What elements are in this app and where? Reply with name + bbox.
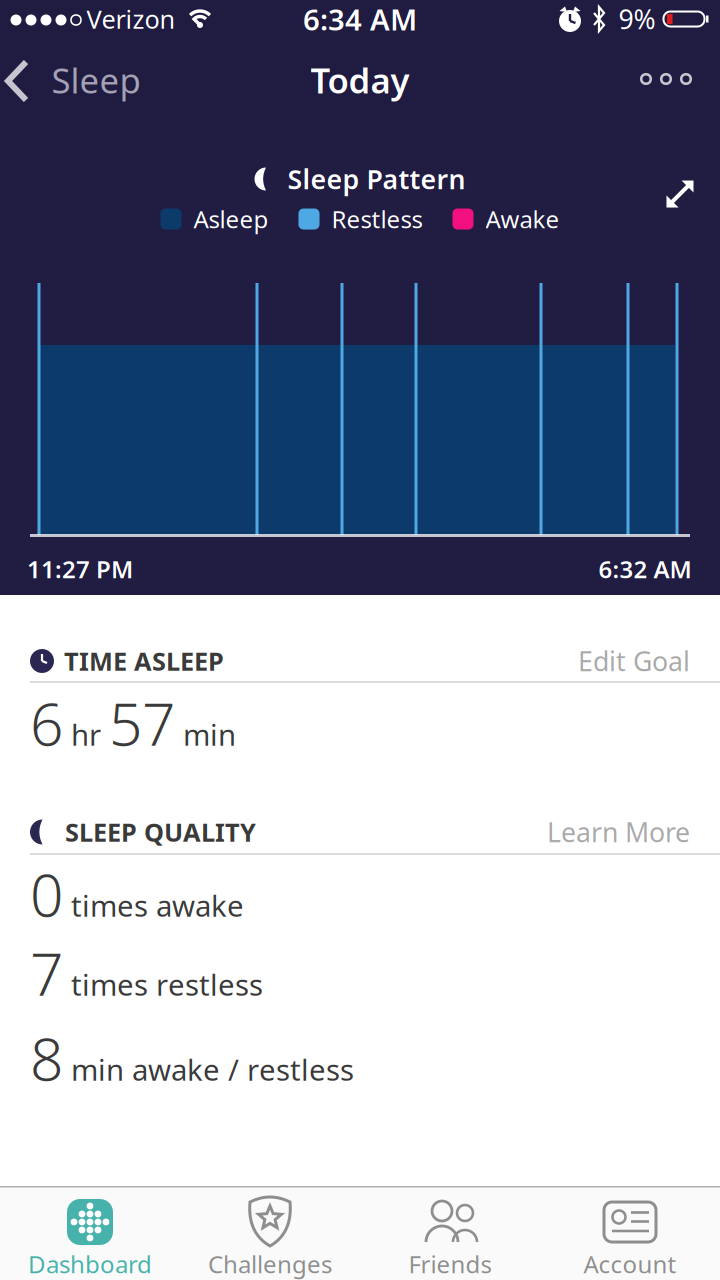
button[interactable]: Account [540, 1186, 720, 1280]
staticText: 11:27 PM [27, 553, 133, 585]
staticText: Learn More [547, 814, 690, 850]
button[interactable]: Friends [360, 1186, 540, 1280]
button[interactable]: Sleep [0, 40, 150, 125]
staticText: Today [310, 57, 409, 103]
button[interactable] [656, 170, 704, 218]
staticText: min awake / restless [63, 1050, 354, 1089]
staticText: Sleep Pattern [287, 161, 465, 197]
button[interactable]: Edit Goal [578, 643, 690, 679]
button[interactable]: Learn More [547, 814, 690, 850]
staticText: min [175, 715, 236, 754]
staticText: hr [63, 715, 109, 754]
staticText: Restless [331, 203, 422, 235]
button[interactable] [636, 59, 696, 99]
staticText: 6:34 AM [303, 0, 417, 38]
staticText: TIME ASLEEP [64, 644, 224, 678]
button[interactable]: Dashboard [0, 1186, 180, 1280]
staticText: SLEEP QUALITY [65, 815, 256, 849]
staticText: 6 [30, 684, 63, 762]
staticText: Challenges [208, 1248, 332, 1280]
staticText: Awake [485, 203, 559, 235]
staticText: 6:32 AM [598, 553, 691, 585]
staticText: 8 [30, 1019, 63, 1097]
button[interactable]: Challenges [180, 1186, 360, 1280]
staticText: 9% [618, 1, 655, 37]
staticText: Dashboard [28, 1248, 152, 1280]
staticText: Verizon [86, 2, 175, 36]
staticText: 7 [30, 934, 63, 1012]
staticText: Account [583, 1248, 676, 1280]
staticText: 57 [109, 684, 175, 762]
staticText: Asleep [193, 203, 268, 235]
staticText: 0 [30, 855, 63, 933]
staticText: Friends [408, 1248, 491, 1280]
staticText: times awake [63, 886, 244, 925]
staticText: Sleep [51, 57, 140, 103]
staticText: Edit Goal [578, 643, 690, 679]
staticText: times restless [63, 965, 263, 1004]
